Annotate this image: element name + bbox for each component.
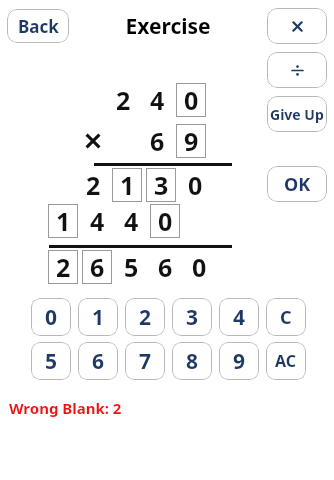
staticText: 4: [150, 83, 165, 117]
staticText: 1: [120, 168, 135, 202]
staticText: 6: [90, 250, 105, 284]
button[interactable]: 6: [78, 342, 118, 380]
staticText: 5: [124, 250, 139, 284]
staticText: Wrong Blank: 2: [9, 398, 122, 418]
button[interactable]: 8: [172, 342, 212, 380]
staticText: 1: [92, 303, 105, 332]
staticText: 6: [92, 347, 105, 376]
staticText: 0: [184, 83, 199, 117]
button[interactable]: 4: [219, 298, 259, 336]
staticText: 3: [186, 303, 199, 332]
staticText: Exercise: [125, 12, 211, 41]
staticText: 6: [158, 250, 173, 284]
button[interactable]: 0: [31, 298, 71, 336]
button[interactable]: AC: [266, 342, 306, 380]
staticText: 0: [158, 204, 173, 238]
button[interactable]: 5: [31, 342, 71, 380]
staticText: 2: [116, 83, 131, 117]
button[interactable]: 7: [125, 342, 165, 380]
staticText: 8: [186, 347, 199, 376]
staticText: 4: [124, 204, 139, 238]
button[interactable]: OK: [267, 166, 327, 202]
button[interactable]: C: [266, 298, 306, 336]
staticText: 0: [192, 250, 207, 284]
button[interactable]: 3: [172, 298, 212, 336]
button[interactable]: Back: [7, 9, 69, 43]
staticText: 1: [56, 204, 71, 238]
staticText: 9: [233, 347, 246, 376]
staticText: C: [280, 305, 292, 330]
button[interactable]: Give Up: [267, 96, 327, 132]
staticText: 0: [188, 168, 203, 202]
staticText: 2: [139, 303, 152, 332]
button[interactable]: 9: [219, 342, 259, 380]
staticText: AC: [275, 350, 297, 372]
staticText: 3: [154, 168, 169, 202]
staticText: 4: [90, 204, 105, 238]
staticText: OK: [284, 172, 311, 197]
staticText: 9: [184, 124, 199, 158]
staticText: 7: [139, 347, 152, 376]
button[interactable]: Multiplication mode: [267, 8, 327, 44]
staticText: 0: [45, 303, 58, 332]
staticText: 2: [56, 250, 71, 284]
staticText: 6: [150, 124, 165, 158]
button[interactable]: 1: [78, 298, 118, 336]
button[interactable]: 2: [125, 298, 165, 336]
staticText: Give Up: [270, 105, 324, 124]
button[interactable]: Division mode: [267, 52, 327, 88]
staticText: 4: [233, 303, 246, 332]
staticText: 2: [86, 168, 101, 202]
staticText: 5: [45, 347, 58, 376]
staticText: Back: [18, 15, 59, 38]
